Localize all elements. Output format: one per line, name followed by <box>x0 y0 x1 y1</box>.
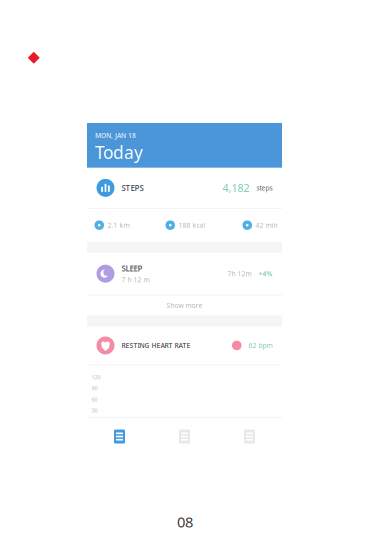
button[interactable]: 42 min <box>242 209 282 242</box>
staticText: SLEEP <box>121 263 142 274</box>
staticText: steps <box>256 183 272 192</box>
staticText: 30 <box>91 407 97 414</box>
staticText: 60 <box>91 396 97 403</box>
staticText: 42 min <box>255 221 277 230</box>
button[interactable]: Today <box>87 418 152 455</box>
button[interactable]: Show more <box>86 295 282 315</box>
button[interactable]: STEPS <box>86 168 282 208</box>
staticText: 7h 12m <box>227 269 251 278</box>
staticText: STEPS <box>121 183 143 193</box>
staticText: 7 h 12 m <box>121 275 149 284</box>
staticText: RESTING HEART RATE <box>121 341 190 350</box>
button[interactable]: Trends <box>152 418 217 455</box>
button[interactable]: 2.1 km <box>94 209 165 242</box>
staticText: Show more <box>166 301 202 310</box>
staticText: 62 bpm <box>248 341 272 350</box>
staticText: 188 kcal <box>178 221 205 230</box>
staticText: +4% <box>258 269 272 278</box>
staticText: 90 <box>91 385 97 392</box>
staticText: 08 <box>177 512 193 531</box>
staticText: 2.1 km <box>107 221 129 230</box>
staticText: 4,182 <box>222 181 249 195</box>
staticText: 120 <box>91 374 100 381</box>
button[interactable]: SLEEP <box>86 253 282 295</box>
button[interactable]: RESTING HEART RATE <box>86 326 282 364</box>
button[interactable]: 188 kcal <box>165 209 242 242</box>
staticText: MON, JAN 18 <box>95 131 136 140</box>
staticText: Today <box>95 141 143 164</box>
button[interactable]: Profile <box>217 418 282 455</box>
